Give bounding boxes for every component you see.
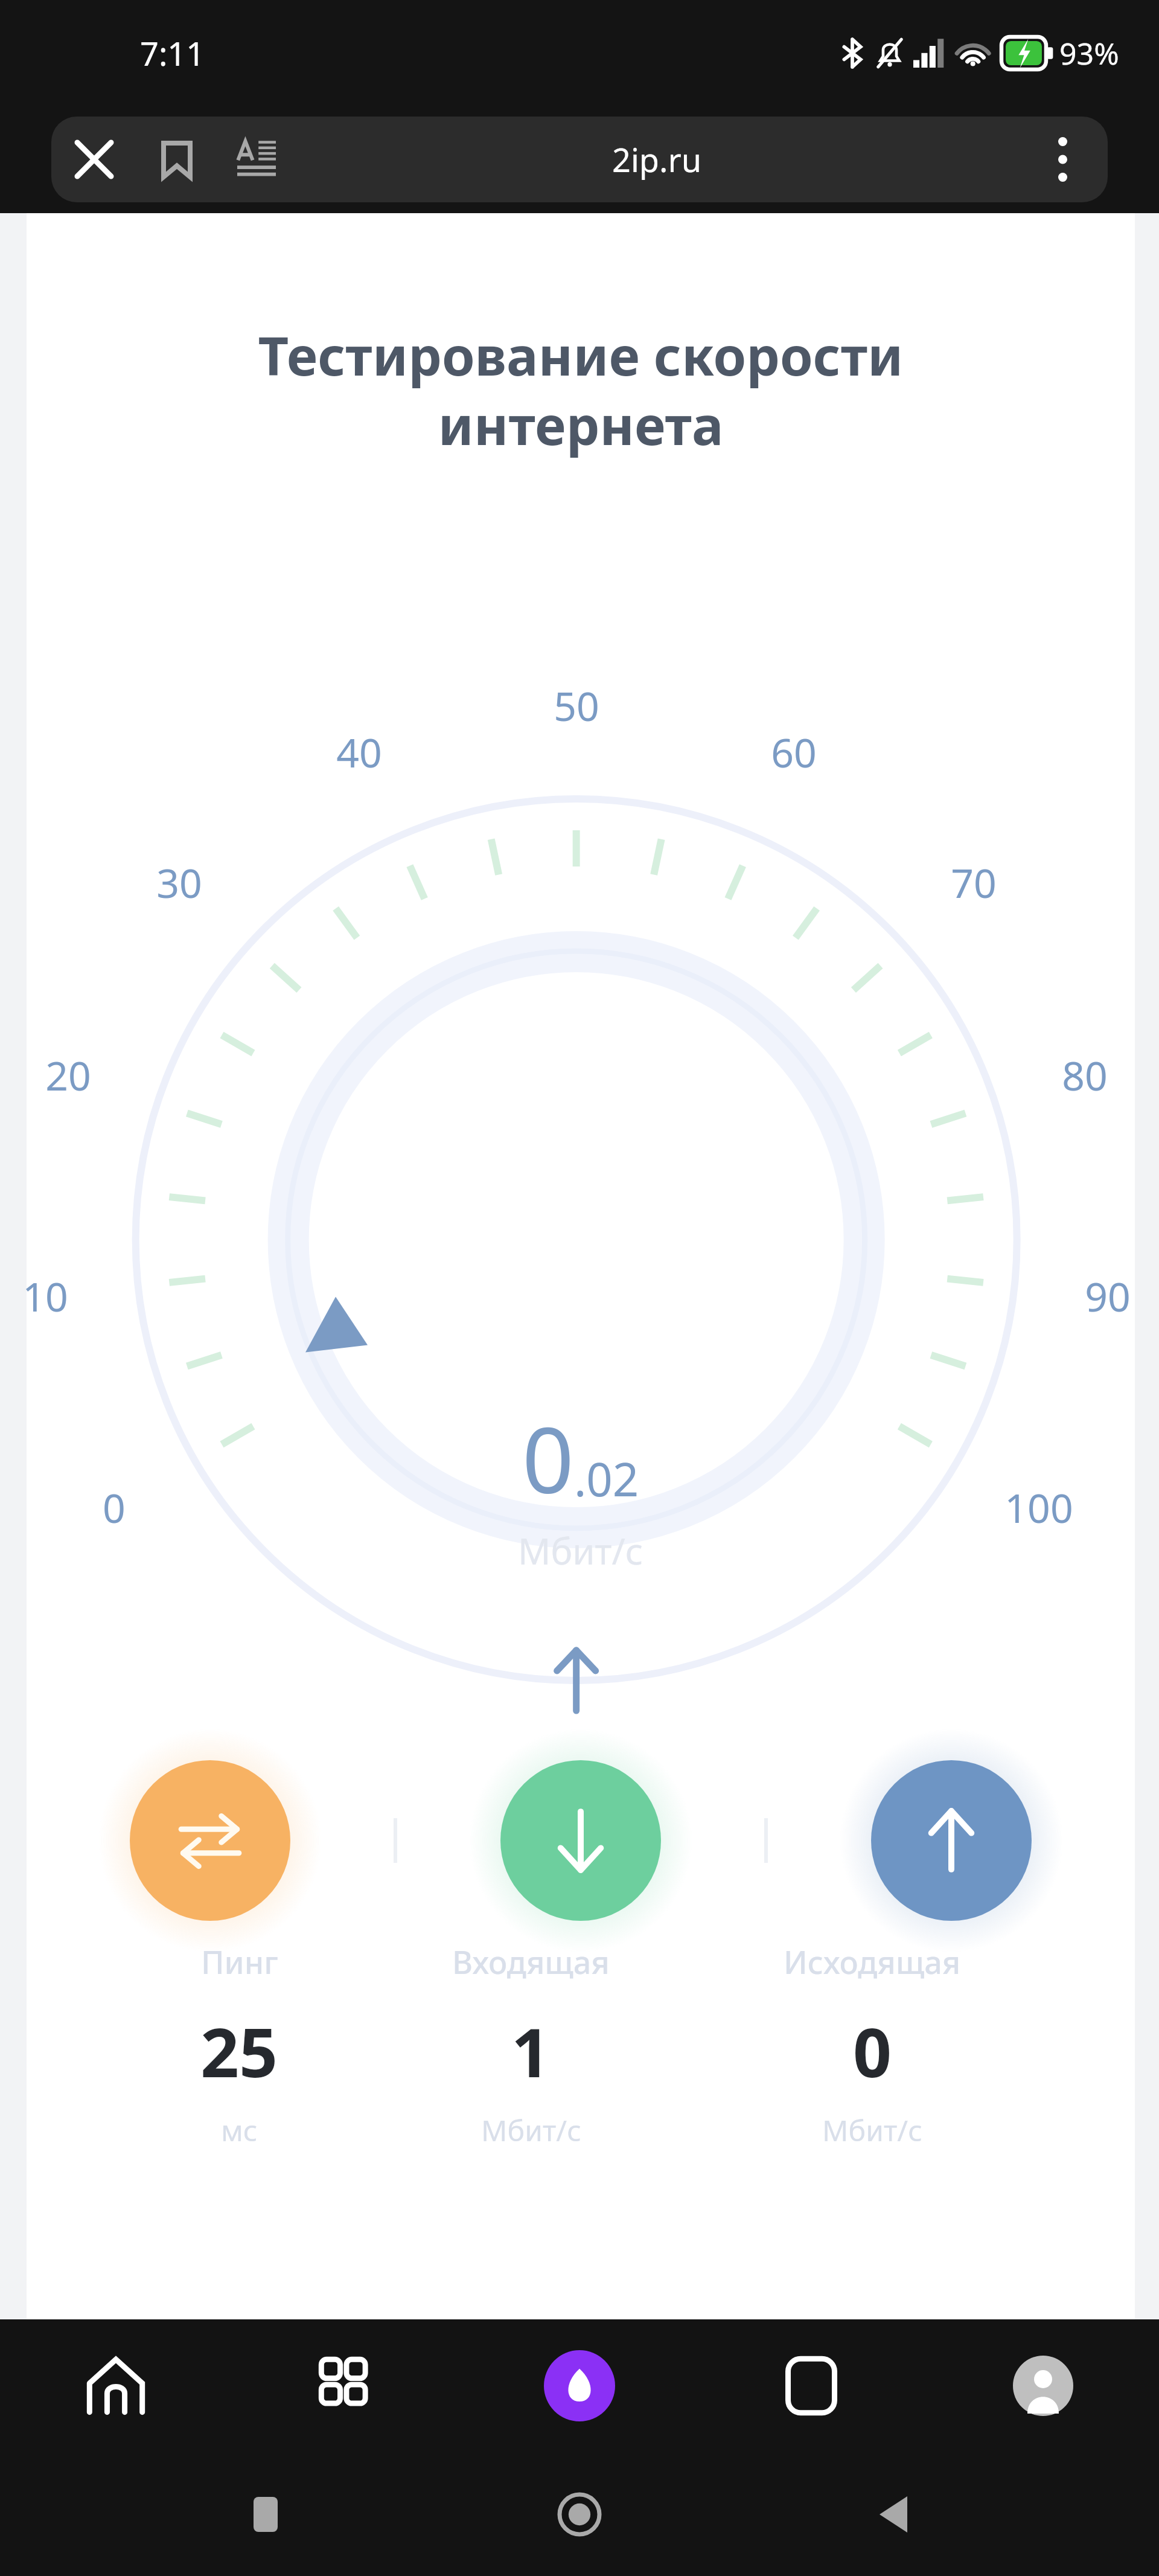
staticText: 70 bbox=[951, 855, 997, 909]
staticText: Исходящая bbox=[784, 1940, 961, 1983]
staticText: 0 bbox=[853, 2005, 892, 2097]
staticText: .02 bbox=[574, 1447, 639, 1510]
button[interactable]: Profile bbox=[927, 2319, 1159, 2452]
staticText: 20 bbox=[45, 1048, 91, 1102]
staticText: 30 bbox=[156, 855, 202, 909]
button[interactable]: Tabs bbox=[695, 2319, 927, 2452]
button[interactable]: Close bbox=[51, 117, 137, 202]
staticText: 2ip.ru bbox=[612, 137, 702, 182]
staticText: Входящая bbox=[452, 1940, 610, 1983]
staticText: мс bbox=[221, 2110, 258, 2150]
button[interactable]: Home bbox=[531, 2466, 628, 2563]
staticText: Тестирование скорости интернета bbox=[27, 319, 1135, 461]
staticText: 80 bbox=[1062, 1048, 1108, 1102]
staticText: 40 bbox=[336, 725, 382, 779]
button[interactable]: Bookmark bbox=[137, 120, 217, 199]
staticText: 100 bbox=[1004, 1480, 1073, 1534]
button[interactable]: More options bbox=[1017, 117, 1108, 202]
staticText: 25 bbox=[200, 2005, 278, 2097]
button[interactable]: Download bbox=[469, 1729, 692, 1952]
button[interactable]: Recents bbox=[217, 2466, 314, 2563]
button[interactable]: Upload bbox=[840, 1729, 1063, 1952]
staticText: 50 bbox=[554, 678, 599, 732]
staticText: Мбит/с bbox=[481, 2110, 581, 2150]
button[interactable]: Home bbox=[0, 2319, 232, 2452]
button[interactable]: Reader mode bbox=[217, 120, 296, 199]
button[interactable]: Alice assistant bbox=[464, 2319, 695, 2452]
button[interactable]: Apps bbox=[232, 2319, 464, 2452]
staticText: 90 bbox=[1085, 1269, 1131, 1323]
staticText: 7:11 bbox=[140, 31, 205, 75]
staticText: Мбит/с bbox=[518, 1526, 643, 1575]
staticText: 10 bbox=[22, 1269, 68, 1323]
staticText: 60 bbox=[771, 725, 817, 779]
staticText: Мбит/с bbox=[822, 2110, 922, 2150]
staticText: 1 bbox=[511, 2005, 551, 2097]
staticText: 0 bbox=[103, 1480, 126, 1534]
button[interactable]: Back bbox=[845, 2466, 942, 2563]
staticText: 0 bbox=[522, 1397, 574, 1520]
staticText: Пинг bbox=[201, 1940, 278, 1983]
staticText: 93% bbox=[1059, 33, 1119, 74]
button[interactable]: Ping bbox=[98, 1729, 322, 1952]
